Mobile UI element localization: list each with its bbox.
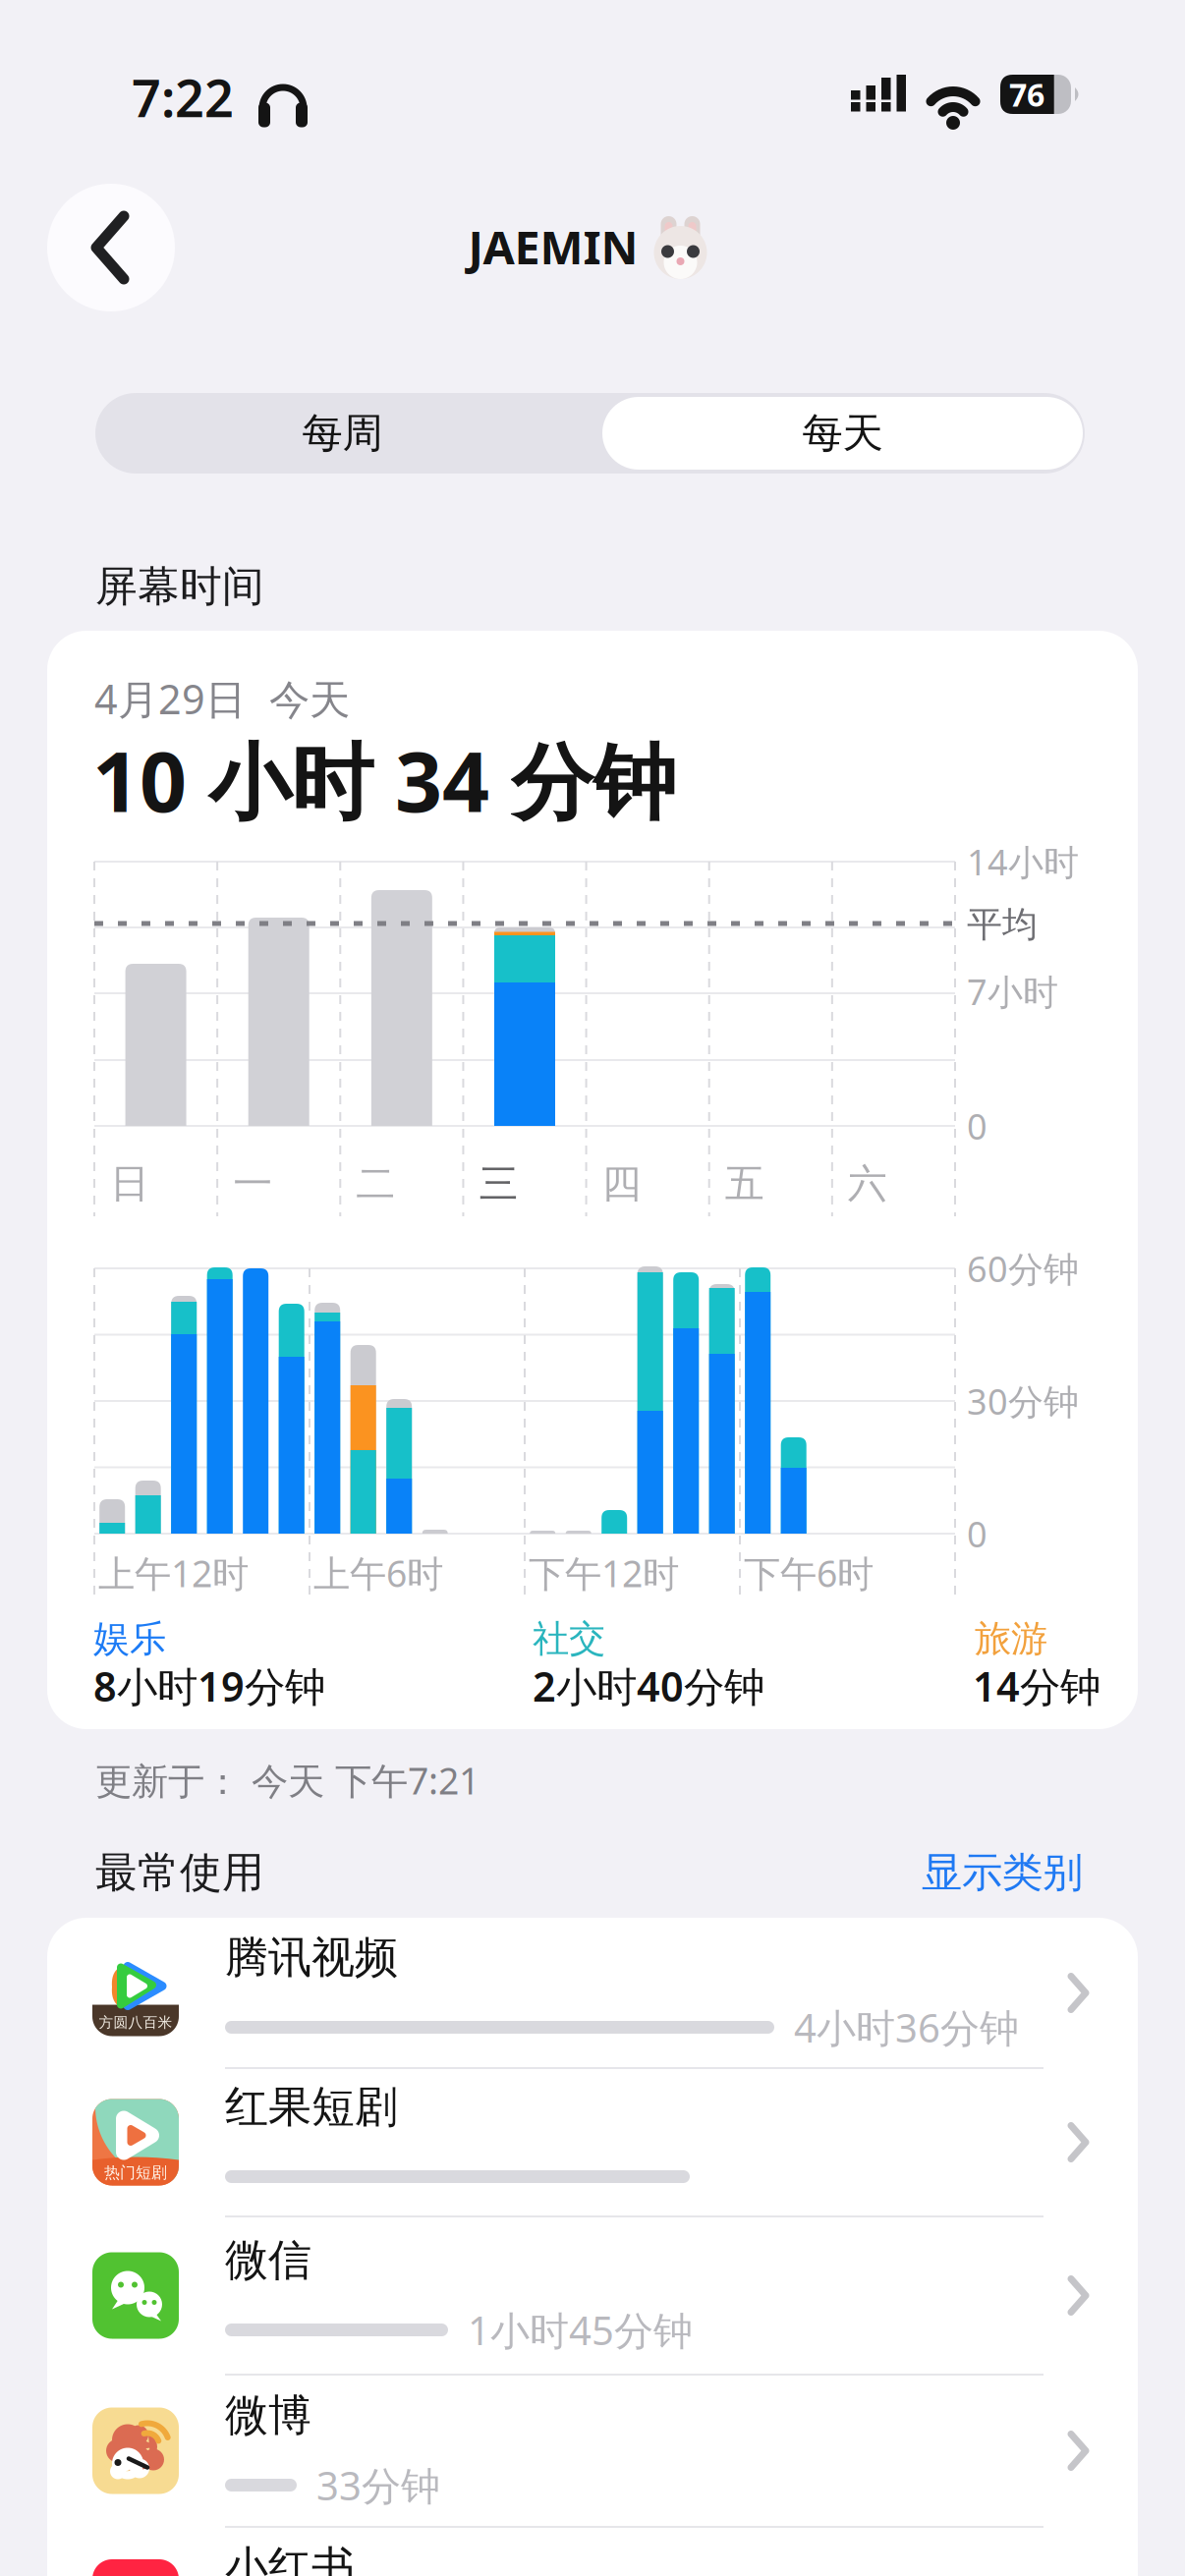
staticText: 0 — [967, 1102, 987, 1149]
button[interactable]: 微博 — [47, 2376, 1138, 2525]
staticText: 红果短剧 — [225, 2080, 398, 2133]
staticText: 每周 — [302, 408, 383, 458]
staticText: 60分钟 — [967, 1245, 1079, 1292]
button[interactable]: 每天 — [600, 393, 1085, 474]
staticText: 7小时 — [967, 968, 1058, 1015]
staticText: 四 — [602, 1160, 641, 1208]
staticText: 方圆八百米 — [99, 2014, 172, 2031]
staticText: 2小时40分钟 — [533, 1659, 764, 1713]
staticText: 每天 — [802, 408, 883, 458]
button[interactable]: 微信 — [47, 2221, 1138, 2370]
staticText: 76 — [1009, 73, 1044, 115]
staticText: 娱乐 — [93, 1616, 166, 1661]
staticText: 微博 — [225, 2389, 311, 2442]
staticText: 屏幕时间 — [95, 561, 264, 612]
staticText: 33分钟 — [316, 2459, 440, 2511]
staticText: 更新于： 今天 下午7:21 — [95, 1756, 480, 1805]
staticText: JAEMIN — [468, 216, 638, 277]
staticText: 上午12时 — [98, 1549, 249, 1597]
staticText: 最常使用 — [95, 1847, 264, 1898]
staticText: 三 — [479, 1160, 518, 1208]
staticText: 平均 — [967, 903, 1038, 946]
button[interactable]: 显示类别 — [922, 1848, 1083, 1898]
staticText: 五 — [725, 1160, 764, 1208]
staticText: 微信 — [225, 2234, 311, 2287]
button[interactable]: Back — [47, 184, 175, 311]
staticText: 7:22 — [132, 63, 234, 131]
staticText: 小红书 — [225, 2541, 355, 2576]
button[interactable]: 每周 — [95, 393, 590, 474]
staticText: 热门短剧 — [104, 2163, 167, 2182]
staticText: 30分钟 — [967, 1378, 1079, 1424]
staticText: 1小时45分钟 — [468, 2304, 693, 2356]
staticText: 六 — [848, 1160, 887, 1208]
staticText: 0 — [967, 1510, 987, 1557]
staticText: 下午6时 — [744, 1549, 874, 1597]
staticText: 14小时 — [967, 838, 1079, 885]
staticText: 10 小时 34 分钟 — [92, 725, 676, 835]
staticText: 一 — [233, 1160, 272, 1208]
staticText: 社交 — [533, 1616, 605, 1661]
button[interactable]: 小红书 — [47, 2528, 1138, 2576]
staticText: 8小时19分钟 — [93, 1659, 325, 1713]
button[interactable]: 热门短剧 — [47, 2068, 1138, 2217]
staticText: 下午12时 — [529, 1549, 679, 1597]
staticText: 日 — [110, 1160, 149, 1208]
staticText: 二 — [356, 1160, 395, 1208]
staticText: 4小时36分钟 — [794, 2001, 1019, 2053]
staticText: 显示类别 — [922, 1848, 1083, 1898]
staticText: 腾讯视频 — [225, 1931, 398, 1984]
staticText: 旅游 — [975, 1616, 1047, 1661]
staticText: 14分钟 — [973, 1659, 1100, 1713]
staticText: 4月29日 今天 — [94, 672, 350, 726]
staticText: 上午6时 — [313, 1549, 443, 1597]
button[interactable]: 方圆八百米 — [47, 1918, 1138, 2068]
